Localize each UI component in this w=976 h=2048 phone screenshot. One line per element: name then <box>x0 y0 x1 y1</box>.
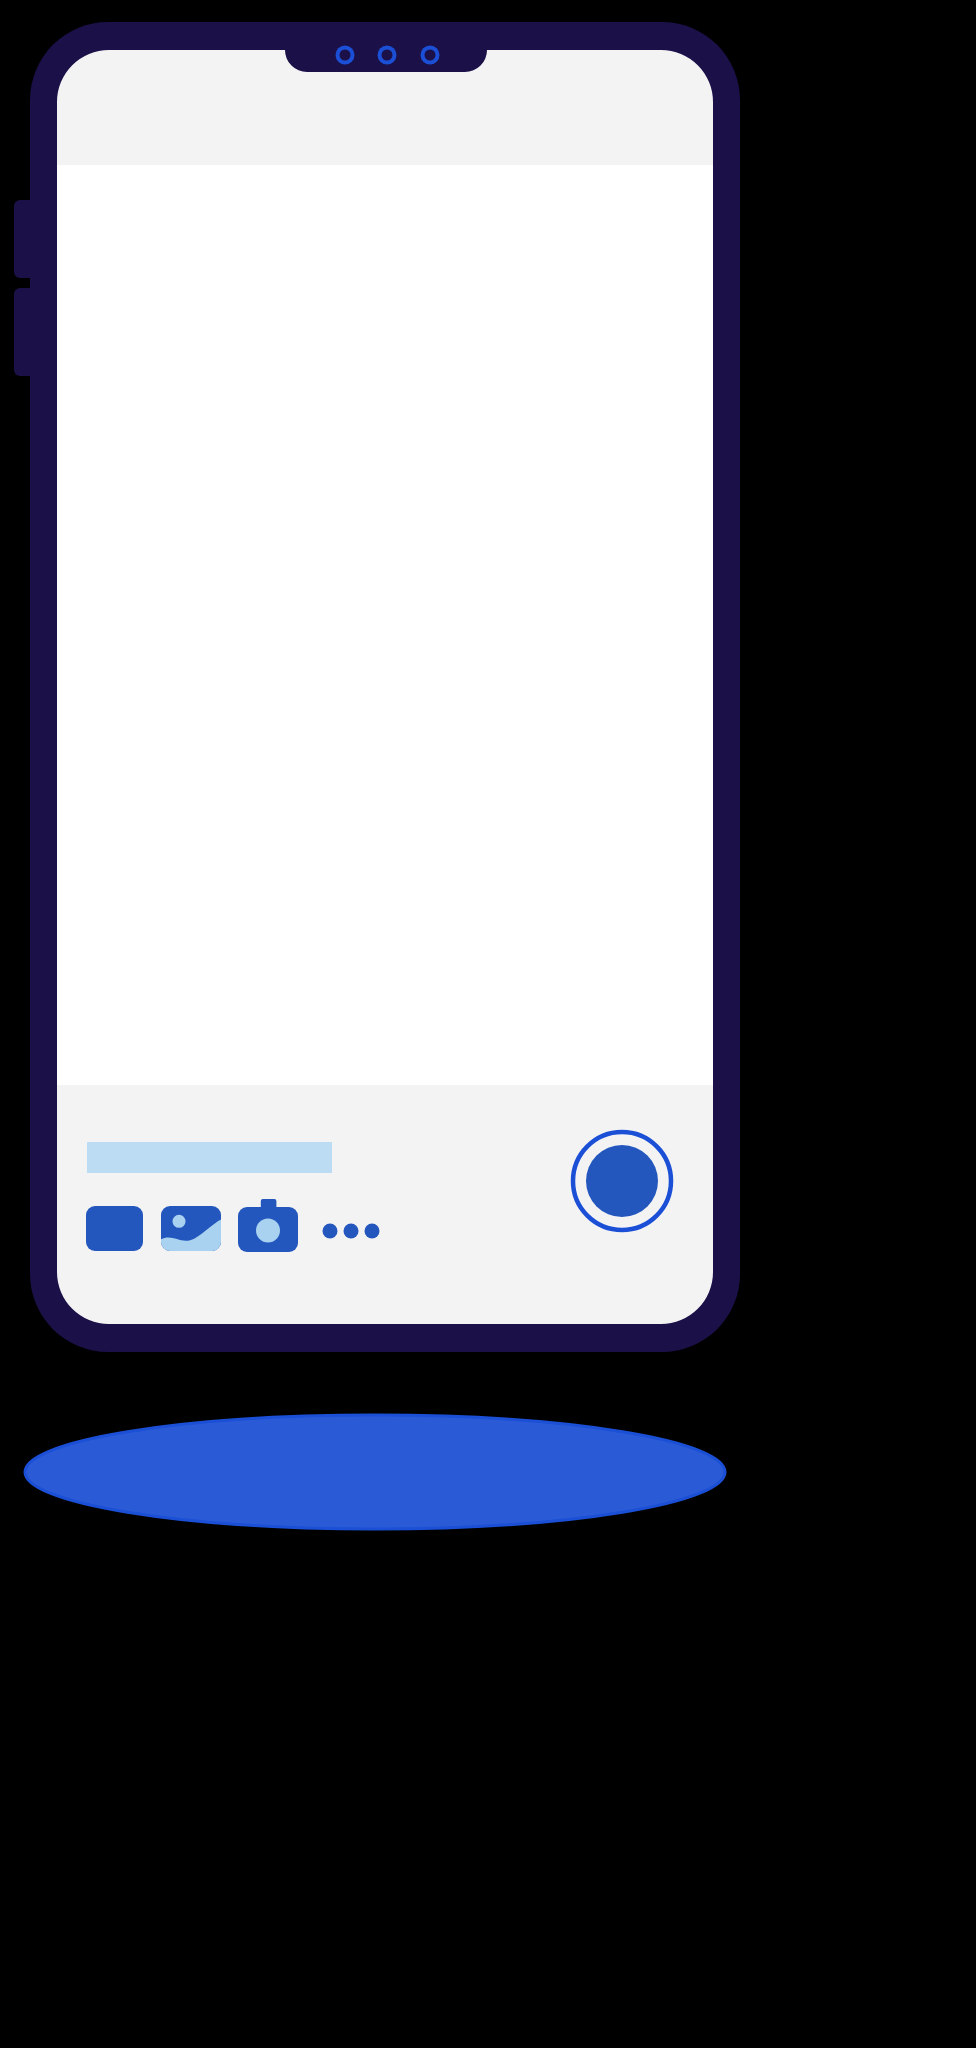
button[interactable]: Camera <box>238 1199 298 1252</box>
button[interactable]: More options <box>316 1211 386 1251</box>
button[interactable]: Photo library <box>161 1206 221 1251</box>
button[interactable]: Attach file <box>86 1206 143 1251</box>
button[interactable]: Record <box>568 1127 676 1235</box>
